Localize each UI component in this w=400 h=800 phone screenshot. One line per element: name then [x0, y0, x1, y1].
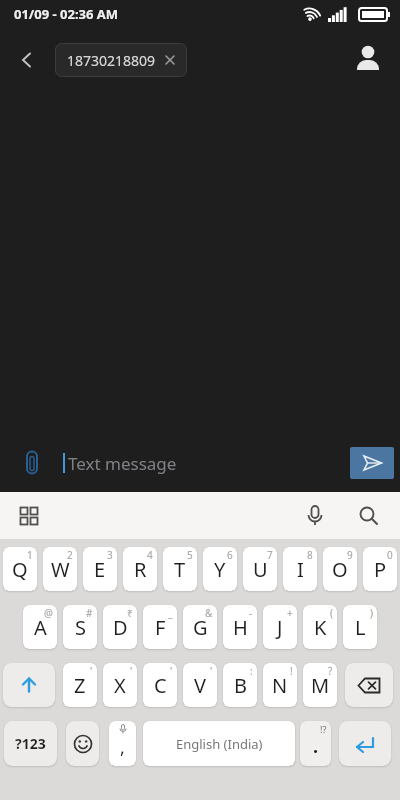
staticText: U — [253, 556, 268, 583]
staticText: Z — [74, 672, 86, 699]
button[interactable]: 18730218809 — [55, 43, 187, 77]
button[interactable] — [16, 503, 42, 529]
staticText: V — [194, 672, 206, 699]
staticText: ₹ — [127, 606, 133, 620]
button[interactable]: D — [103, 605, 137, 649]
staticText: 4 — [147, 548, 153, 562]
staticText: 0 — [387, 548, 393, 562]
staticText: 8 — [307, 548, 313, 562]
staticText: 7 — [267, 548, 273, 562]
staticText: K — [314, 614, 327, 641]
button[interactable]: I — [283, 547, 317, 591]
button[interactable] — [356, 503, 382, 529]
button[interactable] — [3, 663, 55, 707]
button[interactable]: G — [183, 605, 217, 649]
staticText: 1 — [27, 548, 33, 562]
button[interactable]: V — [183, 663, 217, 707]
button[interactable]: Q — [3, 547, 37, 591]
button[interactable] — [349, 41, 387, 79]
staticText: 3 — [107, 548, 113, 562]
button[interactable]: A — [23, 605, 57, 649]
button[interactable]: F — [143, 605, 177, 649]
button[interactable]: , — [109, 721, 136, 766]
button[interactable] — [8, 42, 44, 78]
staticText: 6 — [227, 548, 233, 562]
staticText: X — [114, 672, 126, 699]
button[interactable]: W — [43, 547, 77, 591]
staticText: I — [297, 556, 304, 583]
staticText: T — [174, 556, 186, 583]
staticText: @ — [44, 606, 53, 620]
button[interactable]: S — [63, 605, 97, 649]
button[interactable]: L — [343, 605, 377, 649]
staticText: . — [313, 734, 319, 759]
button[interactable]: J — [263, 605, 297, 649]
staticText: A — [34, 614, 47, 641]
staticText: P — [374, 556, 387, 583]
button[interactable]: M — [303, 663, 337, 707]
staticText: ?123 — [15, 734, 46, 753]
staticText: 18730218809 — [67, 51, 156, 70]
button[interactable] — [18, 449, 46, 477]
staticText: # — [86, 606, 93, 620]
button[interactable]: English (India) — [143, 721, 295, 766]
staticText: J — [277, 614, 283, 641]
staticText: 5 — [187, 548, 193, 562]
staticText: - — [249, 606, 253, 620]
staticText: ! — [290, 664, 293, 678]
button[interactable]: ?123 — [4, 721, 57, 766]
button[interactable]: K — [303, 605, 337, 649]
staticText: W — [51, 556, 70, 583]
button[interactable]: H — [223, 605, 257, 649]
staticText: R — [134, 556, 147, 583]
button[interactable]: B — [223, 663, 257, 707]
button[interactable]: O — [323, 547, 357, 591]
staticText: , — [120, 735, 125, 760]
staticText: M — [311, 672, 330, 699]
staticText: F — [155, 614, 166, 641]
staticText: ? — [328, 664, 333, 678]
button[interactable]: Y — [203, 547, 237, 591]
button[interactable] — [339, 721, 391, 766]
staticText: E — [94, 556, 106, 583]
staticText: ' — [90, 664, 93, 678]
staticText: ) — [370, 606, 373, 620]
staticText: !? — [320, 723, 327, 735]
staticText: Text message — [68, 452, 177, 475]
staticText: S — [75, 614, 86, 641]
button[interactable]: C — [143, 663, 177, 707]
staticText: 2 — [67, 548, 73, 562]
button[interactable] — [302, 503, 328, 529]
staticText: B — [234, 672, 247, 699]
staticText: ' — [210, 664, 213, 678]
staticText: N — [272, 672, 288, 699]
button[interactable]: T — [163, 547, 197, 591]
button[interactable] — [345, 663, 393, 707]
button[interactable] — [66, 721, 99, 766]
button[interactable]: R — [123, 547, 157, 591]
staticText: L — [355, 614, 366, 641]
button[interactable]: N — [263, 663, 297, 707]
staticText: + — [287, 606, 293, 620]
button[interactable]: . — [300, 721, 331, 766]
button[interactable]: X — [103, 663, 137, 707]
staticText: 9 — [347, 548, 353, 562]
staticText: D — [113, 614, 128, 641]
staticText: H — [233, 614, 248, 641]
button[interactable]: U — [243, 547, 277, 591]
staticText: & — [205, 606, 213, 620]
button[interactable]: Z — [63, 663, 97, 707]
button[interactable]: P — [363, 547, 397, 591]
staticText: ' — [170, 664, 173, 678]
staticText: ( — [330, 606, 333, 620]
staticText: Y — [214, 556, 226, 583]
button[interactable]: E — [83, 547, 117, 591]
staticText: C — [154, 672, 167, 699]
button[interactable] — [350, 447, 394, 479]
staticText: _ — [168, 606, 173, 620]
staticText: Q — [12, 556, 28, 583]
staticText: : — [250, 664, 253, 678]
staticText: English (India) — [176, 735, 263, 753]
staticText: G — [193, 614, 208, 641]
staticText: 01/09 - 02:36 AM — [14, 5, 119, 23]
